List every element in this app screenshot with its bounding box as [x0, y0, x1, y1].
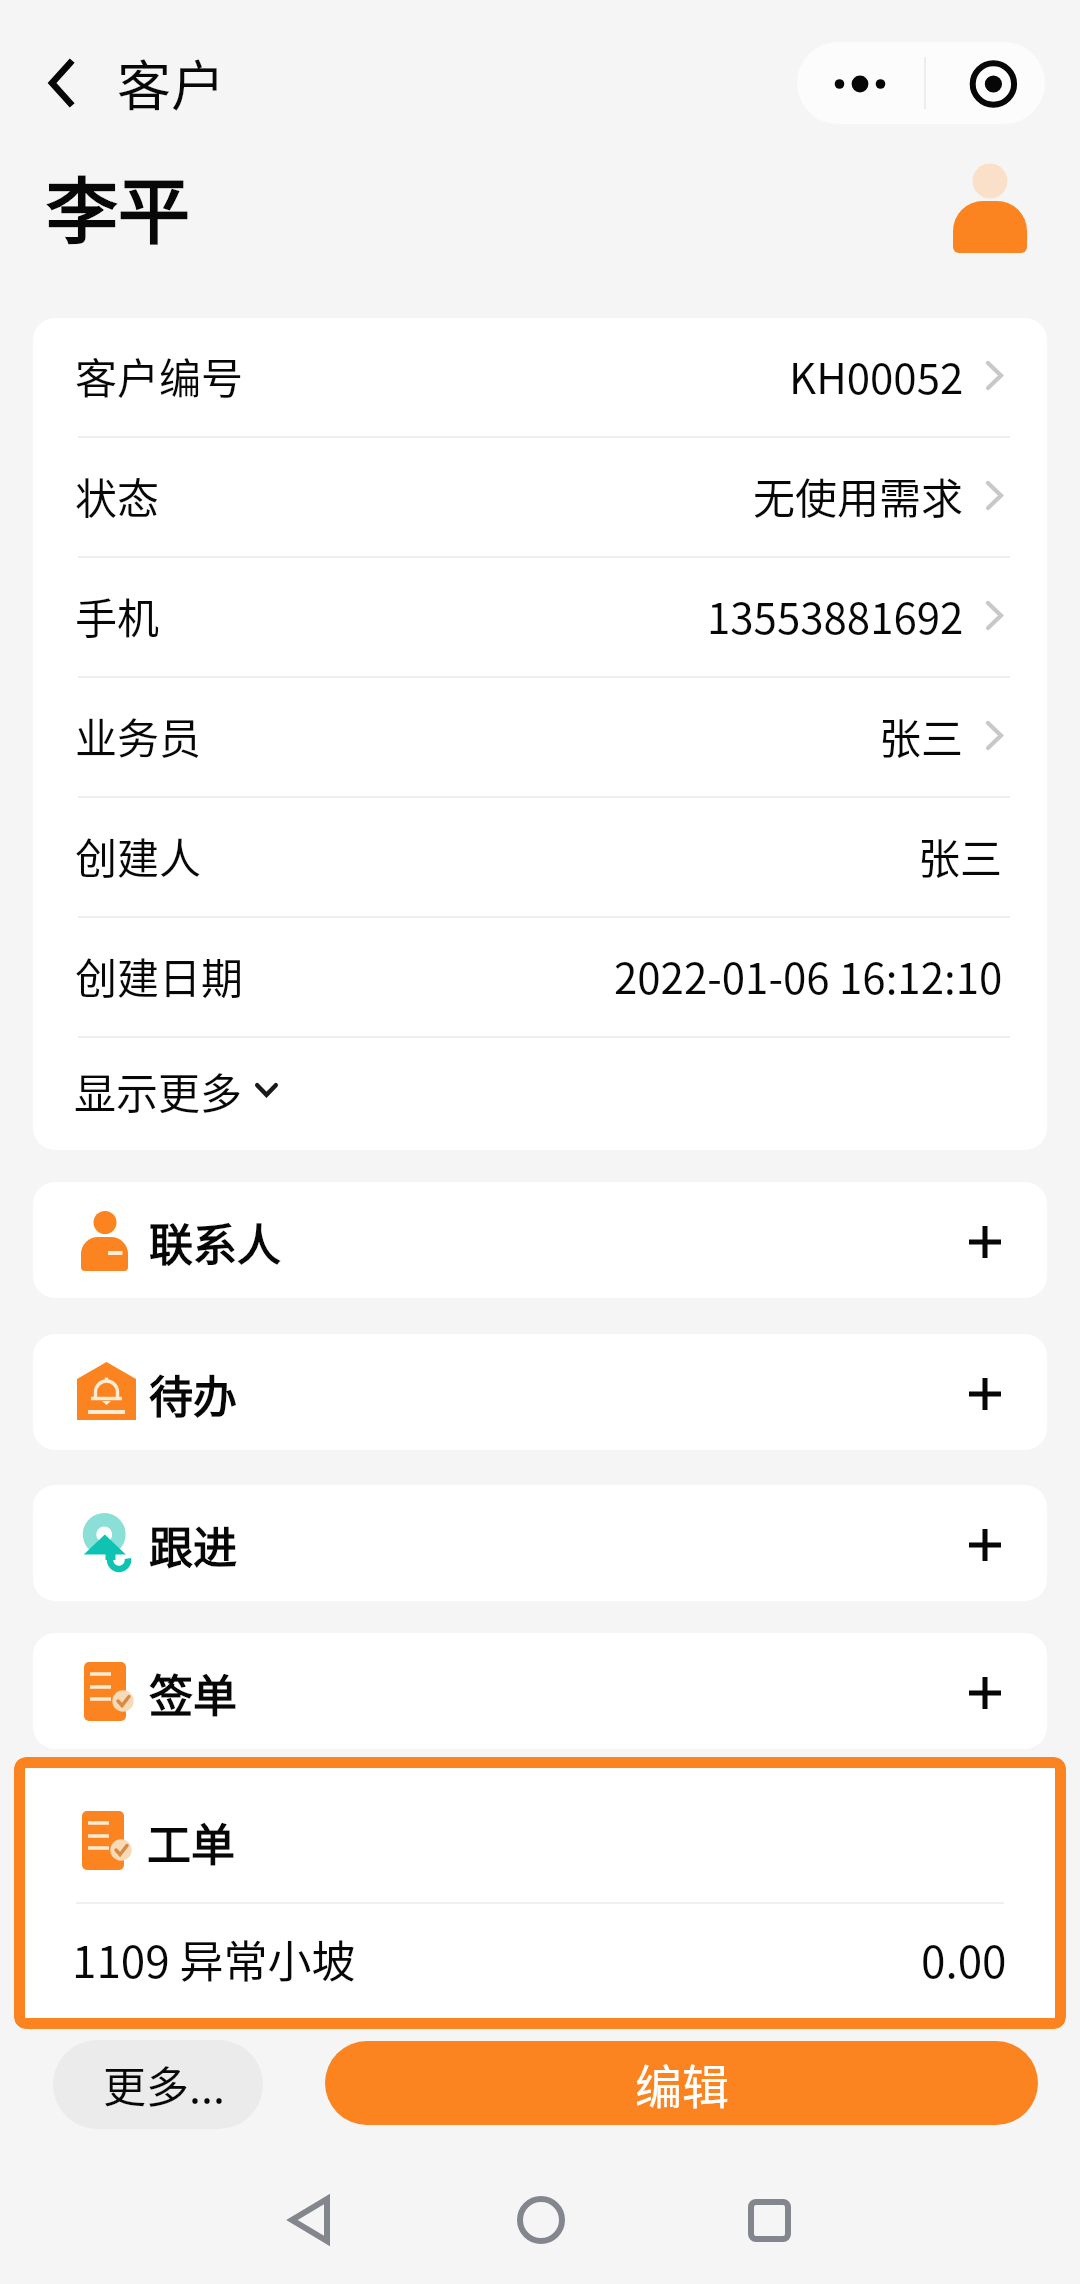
- button[interactable]: Customer avatar: [951, 160, 1029, 255]
- button[interactable]: Home: [486, 2165, 596, 2275]
- button[interactable]: 状态: [33, 438, 1047, 556]
- staticText: 业务员: [75, 705, 202, 766]
- staticText: 13553881692: [707, 585, 964, 646]
- button[interactable]: Back: [26, 48, 96, 118]
- button[interactable]: Add 签单: [954, 1662, 1016, 1724]
- button[interactable]: Add 联系人: [954, 1211, 1016, 1273]
- button[interactable]: Back: [254, 2165, 364, 2275]
- staticText: 创建日期: [75, 945, 244, 1006]
- button[interactable]: 工单: [25, 1768, 1055, 1902]
- staticText: 0.00: [921, 1927, 1007, 1991]
- button[interactable]: 签单: [33, 1633, 1047, 1749]
- staticText: 状态: [75, 465, 160, 526]
- button[interactable]: Close mini program: [926, 42, 1045, 124]
- staticText: 客户: [117, 43, 225, 121]
- staticText: 张三: [879, 705, 964, 766]
- staticText: 工单: [147, 1810, 235, 1874]
- button[interactable]: 创建日期: [33, 918, 1047, 1036]
- staticText: 联系人: [149, 1210, 281, 1274]
- button[interactable]: 手机: [33, 558, 1047, 676]
- button[interactable]: 客户编号: [33, 318, 1047, 436]
- staticText: 无使用需求: [753, 465, 964, 526]
- button[interactable]: 创建人: [33, 798, 1047, 916]
- staticText: 创建人: [75, 825, 202, 886]
- staticText: 跟进: [149, 1513, 237, 1577]
- staticText: 张三: [918, 825, 1003, 886]
- button[interactable]: 1109 异常小坡: [25, 1904, 1055, 2018]
- button[interactable]: 跟进: [33, 1485, 1047, 1601]
- button[interactable]: 待办: [33, 1334, 1047, 1450]
- button[interactable]: Add 待办: [954, 1363, 1016, 1425]
- button[interactable]: More options: [797, 42, 924, 124]
- button[interactable]: 编辑: [325, 2041, 1038, 2125]
- button[interactable]: 显示更多: [33, 1038, 1047, 1150]
- staticText: KH00052: [789, 345, 964, 406]
- button[interactable]: 联系人: [33, 1182, 1047, 1298]
- staticText: 待办: [149, 1362, 237, 1426]
- staticText: 1109 异常小坡: [72, 1927, 356, 1991]
- staticText: 更多...: [103, 2053, 225, 2115]
- button[interactable]: Add 跟进: [954, 1514, 1016, 1576]
- staticText: 显示更多: [74, 1060, 243, 1121]
- staticText: 2022-01-06 16:12:10: [614, 945, 1003, 1006]
- staticText: 李平: [46, 153, 191, 257]
- staticText: 编辑: [635, 2049, 729, 2117]
- button[interactable]: Recent apps: [714, 2165, 824, 2275]
- button[interactable]: 业务员: [33, 678, 1047, 796]
- staticText: 手机: [75, 585, 160, 646]
- staticText: 客户编号: [75, 345, 244, 406]
- staticText: 签单: [149, 1661, 237, 1725]
- button[interactable]: 更多...: [53, 2040, 263, 2129]
